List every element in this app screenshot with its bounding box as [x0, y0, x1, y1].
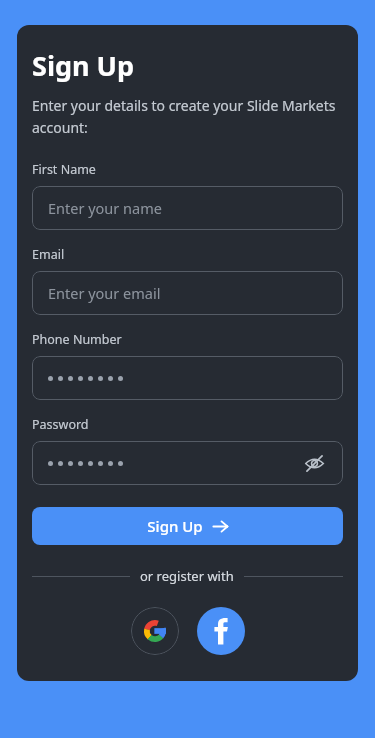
button[interactable]: Sign Up	[32, 507, 343, 545]
button[interactable]	[32, 356, 343, 400]
button[interactable]: Enter your email	[32, 271, 343, 315]
staticText: Enter your name	[48, 198, 162, 218]
staticText: First Name	[32, 161, 96, 178]
staticText: Password	[32, 416, 89, 433]
button[interactable]: Toggle password visibility	[301, 450, 327, 476]
staticText: Enter your details to create your Slide …	[32, 96, 343, 137]
staticText: Email	[32, 246, 65, 263]
button[interactable]: Enter your name	[32, 186, 343, 230]
staticText: Sign Up	[147, 516, 203, 536]
button[interactable]: Sign up with Facebook	[197, 607, 245, 655]
staticText: Phone Number	[32, 331, 122, 348]
button[interactable]: Toggle password visibility	[32, 441, 343, 485]
staticText: Sign Up	[32, 47, 135, 84]
staticText: or register with	[140, 567, 234, 585]
button[interactable]: Sign up with Google	[131, 607, 179, 655]
staticText: Enter your email	[48, 283, 161, 303]
